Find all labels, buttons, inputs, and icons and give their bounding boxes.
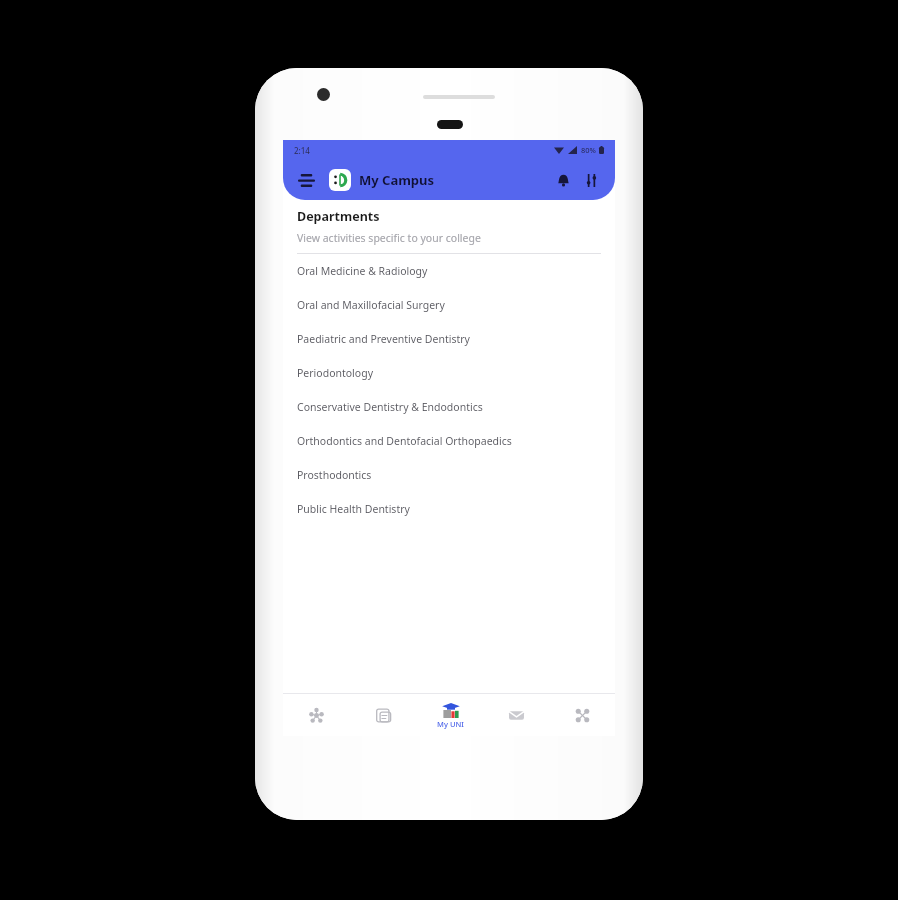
button[interactable]: Paediatric and Preventive Dentistry	[283, 322, 615, 356]
staticText: 80%	[581, 145, 596, 155]
staticText: My UNI	[437, 719, 464, 729]
staticText: Conservative Dentistry & Endodontics	[297, 400, 483, 414]
button[interactable]: Oral and Maxillofacial Surgery	[283, 288, 615, 322]
staticText: Periodontology	[297, 366, 373, 380]
button[interactable]: Menu	[291, 165, 321, 195]
staticText: Public Health Dentistry	[297, 502, 410, 516]
button[interactable]: Orthodontics and Dentofacial Orthopaedic…	[283, 424, 615, 458]
staticText: Oral and Maxillofacial Surgery	[297, 298, 445, 312]
button[interactable]: Notes	[350, 694, 417, 736]
staticText: Prosthodontics	[297, 468, 372, 482]
button[interactable]: Groups	[549, 694, 615, 736]
button[interactable]: My UNI	[417, 694, 483, 736]
staticText: Orthodontics and Dentofacial Orthopaedic…	[297, 434, 512, 448]
staticText: Oral Medicine & Radiology	[297, 264, 428, 278]
button[interactable]: Oral Medicine & Radiology	[283, 254, 615, 288]
button[interactable]: Notifications	[549, 166, 577, 194]
button[interactable]: Periodontology	[283, 356, 615, 390]
staticText: 2:14	[294, 145, 310, 156]
button[interactable]: Mail	[483, 694, 549, 736]
staticText: My Campus	[359, 171, 435, 189]
staticText: Departments	[297, 208, 380, 225]
button[interactable]: Conservative Dentistry & Endodontics	[283, 390, 615, 424]
staticText: Paediatric and Preventive Dentistry	[297, 332, 470, 346]
button[interactable]: Prosthodontics	[283, 458, 615, 492]
staticText: View activities specific to your college	[297, 231, 481, 245]
button[interactable]: Network	[283, 694, 350, 736]
button[interactable]: Filter settings	[577, 166, 605, 194]
button[interactable]: Public Health Dentistry	[283, 492, 615, 526]
